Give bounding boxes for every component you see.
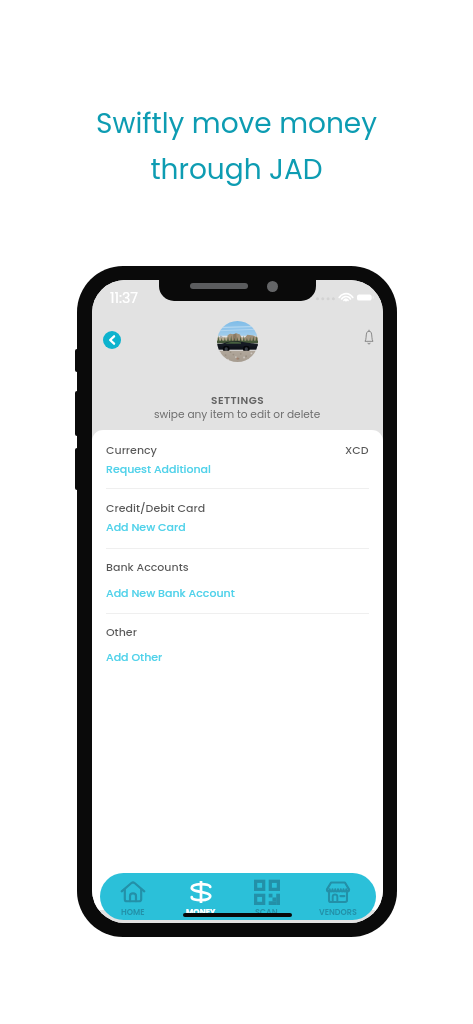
staticText: Other [106,624,137,639]
staticText: Add Other [106,649,163,664]
staticText: Request Additional [106,461,211,476]
button[interactable]: Back [103,331,121,349]
button[interactable]: Notifications [358,326,380,348]
staticText: XCD [345,442,369,457]
staticText: 11:37 [110,288,138,308]
button[interactable]: Other [92,614,383,674]
button[interactable]: Profile photo [217,321,258,362]
staticText: Add New Bank Account [106,585,235,600]
staticText: VENDORS [319,907,357,917]
staticText: SETTINGS [211,393,265,408]
staticText: SCAN [255,907,278,917]
staticText: HOME [121,907,145,917]
button[interactable]: SCAN [232,873,301,920]
button[interactable]: VENDORS [303,873,372,920]
staticText: through JAD [150,150,323,189]
button[interactable]: HOME [100,873,167,920]
button[interactable]: Currency [92,430,383,489]
staticText: swipe any item to edit or delete [154,407,321,422]
staticText: Credit/Debit Card [106,500,206,515]
button[interactable]: Credit/Debit Card [92,489,383,549]
staticText: Add New Card [106,519,186,534]
button[interactable]: Bank Accounts [92,549,383,614]
staticText: Currency [106,442,158,457]
button[interactable]: MONEY [166,873,235,920]
staticText: MONEY [186,907,216,917]
staticText: Swiftly move money [96,104,377,143]
staticText: Bank Accounts [106,559,189,574]
